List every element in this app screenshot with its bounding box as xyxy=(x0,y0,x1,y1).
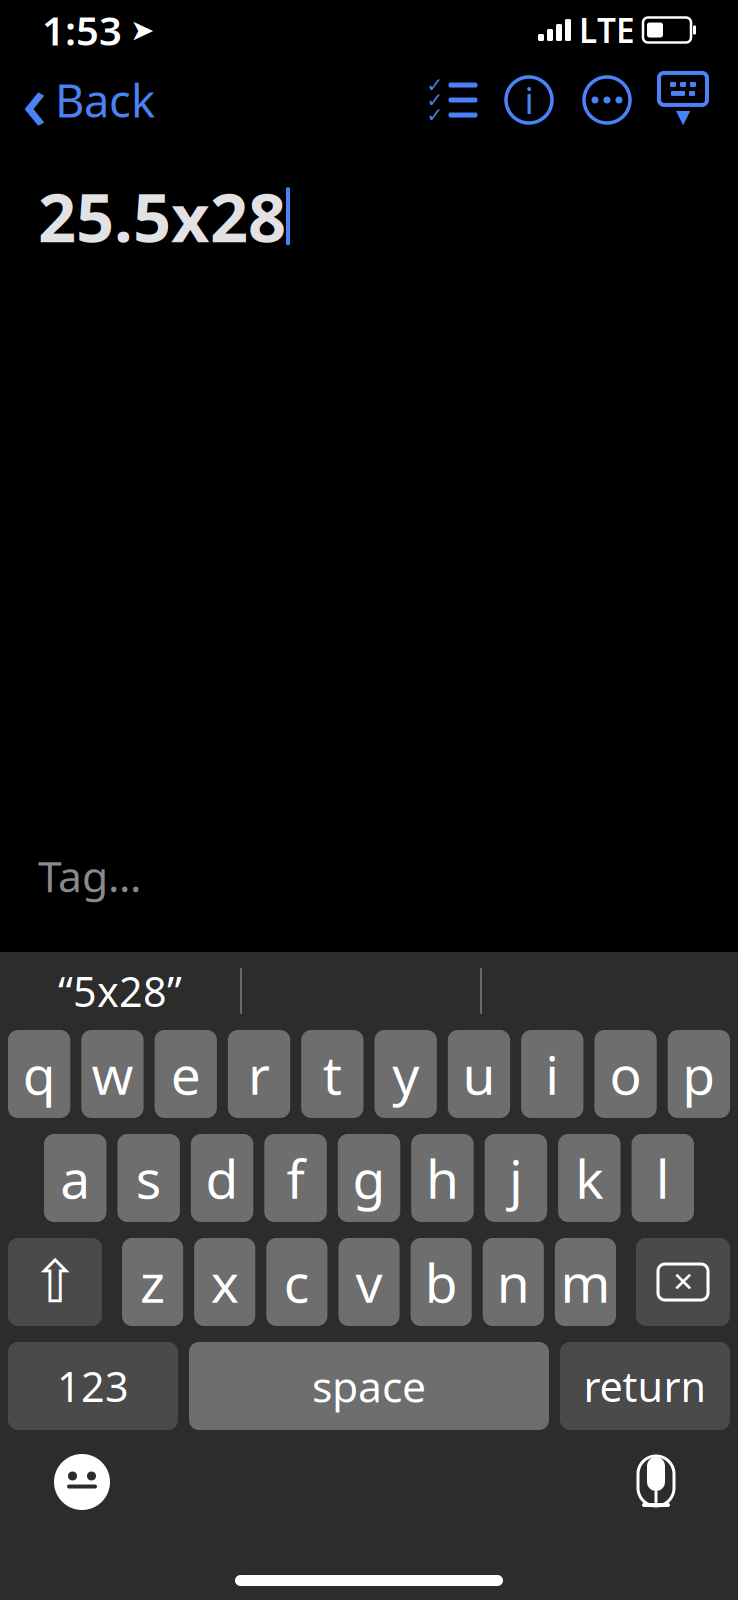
staticText: i xyxy=(524,76,533,124)
staticText: ➤ xyxy=(130,13,155,47)
staticText: i xyxy=(545,1039,559,1109)
button[interactable]: q xyxy=(8,1030,70,1118)
button[interactable]: c xyxy=(266,1238,327,1326)
staticText: p xyxy=(682,1039,715,1109)
staticText: j xyxy=(509,1143,523,1213)
button[interactable]: e xyxy=(155,1030,217,1118)
button[interactable]: s xyxy=(117,1134,180,1222)
staticText: n xyxy=(497,1247,530,1317)
staticText: l xyxy=(656,1143,670,1213)
staticText: h xyxy=(426,1143,459,1213)
staticText: LTE xyxy=(579,8,635,52)
button[interactable]: l xyxy=(632,1134,694,1222)
button[interactable]: r xyxy=(228,1030,290,1118)
staticText: f xyxy=(287,1143,305,1213)
staticText: s xyxy=(136,1143,162,1213)
button[interactable]: m xyxy=(555,1238,616,1326)
button[interactable]: t xyxy=(301,1030,363,1118)
button[interactable]: d xyxy=(191,1134,253,1222)
button[interactable]: f xyxy=(264,1134,327,1222)
staticText: x xyxy=(211,1247,239,1317)
staticText: ▼ xyxy=(676,106,690,127)
staticText: m xyxy=(560,1247,610,1317)
staticText: v xyxy=(355,1247,382,1317)
button[interactable]: n xyxy=(483,1238,544,1326)
button[interactable]: h xyxy=(411,1134,474,1222)
button[interactable]: w xyxy=(81,1030,144,1118)
button[interactable]: return xyxy=(560,1342,730,1430)
staticText: c xyxy=(284,1247,310,1317)
button[interactable]: v xyxy=(338,1238,399,1326)
button[interactable]: “5x28” xyxy=(0,954,240,1028)
button[interactable]: u xyxy=(448,1030,510,1118)
staticText: g xyxy=(352,1143,385,1213)
staticText: w xyxy=(91,1039,133,1109)
button[interactable]: Shift xyxy=(8,1238,102,1326)
button[interactable]: p xyxy=(668,1030,730,1118)
staticText: t xyxy=(323,1039,342,1109)
staticText: d xyxy=(206,1143,239,1213)
button[interactable]: Checklist xyxy=(416,65,490,135)
staticText: ✓ xyxy=(426,89,443,111)
staticText: 25.5x28 xyxy=(38,172,286,260)
button[interactable]: k xyxy=(558,1134,620,1222)
button[interactable]: Emoji xyxy=(40,1440,124,1524)
staticText: 123 xyxy=(57,1359,129,1413)
staticText: space xyxy=(312,1358,426,1414)
button[interactable]: ‹ xyxy=(4,65,173,135)
staticText: ✓ xyxy=(426,74,443,96)
button[interactable]: b xyxy=(411,1238,472,1326)
staticText: “5x28” xyxy=(58,964,182,1018)
button[interactable]: Delete xyxy=(636,1238,730,1326)
button[interactable]: o xyxy=(594,1030,657,1118)
button[interactable]: y xyxy=(374,1030,437,1118)
staticText: b xyxy=(425,1247,458,1317)
staticText: 1:53 xyxy=(42,3,122,56)
staticText: ‹ xyxy=(22,49,47,151)
staticText: u xyxy=(462,1039,495,1109)
button[interactable]: a xyxy=(44,1134,106,1222)
staticText: z xyxy=(140,1247,165,1317)
staticText: ✓ xyxy=(426,104,443,126)
staticText: k xyxy=(575,1143,603,1213)
staticText: Tag... xyxy=(38,847,141,904)
staticText: o xyxy=(609,1039,641,1109)
staticText: e xyxy=(171,1039,201,1109)
button[interactable]: Info xyxy=(490,65,568,135)
button[interactable]: g xyxy=(338,1134,400,1222)
button[interactable]: More options xyxy=(568,65,646,135)
button[interactable]: i xyxy=(521,1030,583,1118)
button[interactable]: space xyxy=(189,1342,549,1430)
staticText: return xyxy=(583,1359,706,1413)
button[interactable]: Hide keyboard xyxy=(646,65,720,135)
button[interactable]: Dictate xyxy=(614,1440,698,1524)
staticText: a xyxy=(60,1143,90,1213)
button[interactable]: j xyxy=(485,1134,547,1222)
button[interactable]: x xyxy=(194,1238,255,1326)
button[interactable]: 123 xyxy=(8,1342,178,1430)
button[interactable]: z xyxy=(122,1238,183,1326)
staticText: y xyxy=(392,1039,419,1109)
staticText: Back xyxy=(55,70,155,130)
staticText: ✕ xyxy=(672,1267,694,1297)
staticText: ⇧ xyxy=(30,1249,79,1315)
staticText: q xyxy=(23,1039,56,1109)
staticText: r xyxy=(248,1039,270,1109)
